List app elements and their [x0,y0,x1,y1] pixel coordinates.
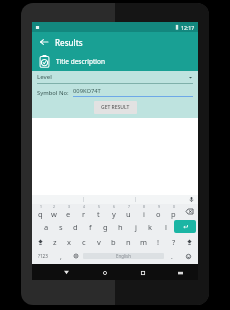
button[interactable]: Shift right [181,234,197,249]
staticText: e [66,209,71,219]
staticText: t [97,209,100,219]
button[interactable]: Hide keyboard [175,267,186,278]
staticText: l [165,222,167,232]
staticText: Level [37,73,52,81]
staticText: q [38,209,43,219]
button[interactable]: k [143,219,158,234]
staticText: GET RESULT [101,104,130,111]
staticText: d [73,222,78,232]
staticText: ! [157,237,160,247]
staticText: b [111,237,116,247]
button[interactable]: ? [166,234,181,249]
button[interactable]: Back [61,267,72,278]
button[interactable]: z [48,234,62,249]
staticText: 2 [53,204,55,209]
button[interactable]: Back [37,35,51,49]
button[interactable]: s [53,219,68,234]
other: Open dropdown [188,75,193,80]
button[interactable]: c [76,234,91,249]
button[interactable]: x [62,234,76,249]
button[interactable]: 0 [166,204,181,219]
staticText: k [148,222,153,232]
staticText: Results [55,37,83,48]
button[interactable]: . [164,249,179,263]
staticText: s [59,222,63,232]
button[interactable]: Voice input [187,195,196,204]
staticText: z [53,237,57,247]
button[interactable]: 5 [91,204,106,219]
staticText: h [118,222,123,232]
staticText: 0 [173,204,175,209]
button[interactable]: Settings [68,249,83,263]
staticText: ? [172,237,176,247]
staticText: , [60,252,62,261]
button[interactable]: Recent apps [137,267,148,278]
button[interactable]: 6 [106,204,121,219]
staticText: m [140,237,148,247]
button[interactable]: n [121,234,136,249]
staticText: n [126,237,131,247]
button[interactable]: g [98,219,113,234]
button[interactable]: 9 [151,204,166,219]
staticText: 4 [83,204,85,209]
staticText: x [67,237,71,247]
button[interactable]: 009KO74T [73,87,193,97]
staticText: u [126,209,131,219]
button[interactable]: English [83,253,164,259]
button[interactable]: Backspace [181,204,197,219]
button[interactable]: d [68,219,83,234]
button[interactable]: 8 [136,204,151,219]
staticText: j [135,222,137,232]
staticText: 7 [128,204,130,209]
button[interactable]: a [39,219,53,234]
staticText: o [156,209,161,219]
staticText: . [171,252,173,261]
button[interactable]: Emoji [179,249,197,263]
staticText: p [171,209,176,219]
staticText: v [97,237,101,247]
staticText: 1 [40,204,42,209]
staticText: 5 [98,204,100,209]
button[interactable]: Title description [32,52,198,71]
button[interactable]: f [83,219,98,234]
staticText: English [116,253,131,259]
staticText: c [82,237,86,247]
staticText: w [51,209,57,219]
staticText: Symbol No: [37,89,69,97]
button[interactable]: 7 [121,204,136,219]
button[interactable]: Shift [33,234,48,249]
button[interactable]: , [53,249,68,263]
staticText: r [82,209,86,219]
staticText: ?123 [38,253,48,259]
button[interactable]: Enter [174,220,196,233]
button[interactable]: Home [99,267,110,278]
staticText: 6 [113,204,115,209]
button[interactable]: l [158,219,173,234]
staticText: y [112,209,116,219]
staticText: 12:17 [181,24,195,31]
staticText: g [103,222,108,232]
button[interactable]: 1 [33,204,47,219]
button[interactable]: Level [32,71,198,83]
staticText: i [143,209,145,219]
button[interactable]: h [113,219,128,234]
staticText: 8 [143,204,145,209]
staticText: Title description [56,57,105,66]
button[interactable]: b [106,234,121,249]
staticText: 9 [158,204,160,209]
button[interactable]: GET RESULT [94,101,137,114]
staticText: a [44,222,49,232]
button[interactable]: 2 [47,204,61,219]
button[interactable]: 4 [76,204,91,219]
staticText: 009KO74T [73,87,101,95]
button[interactable]: 3 [61,204,76,219]
staticText: 3 [68,204,70,209]
staticText: f [89,222,92,232]
button[interactable]: j [128,219,143,234]
button[interactable]: v [91,234,106,249]
button[interactable]: ! [151,234,166,249]
button[interactable]: m [136,234,151,249]
button[interactable]: ?123 [33,249,53,263]
